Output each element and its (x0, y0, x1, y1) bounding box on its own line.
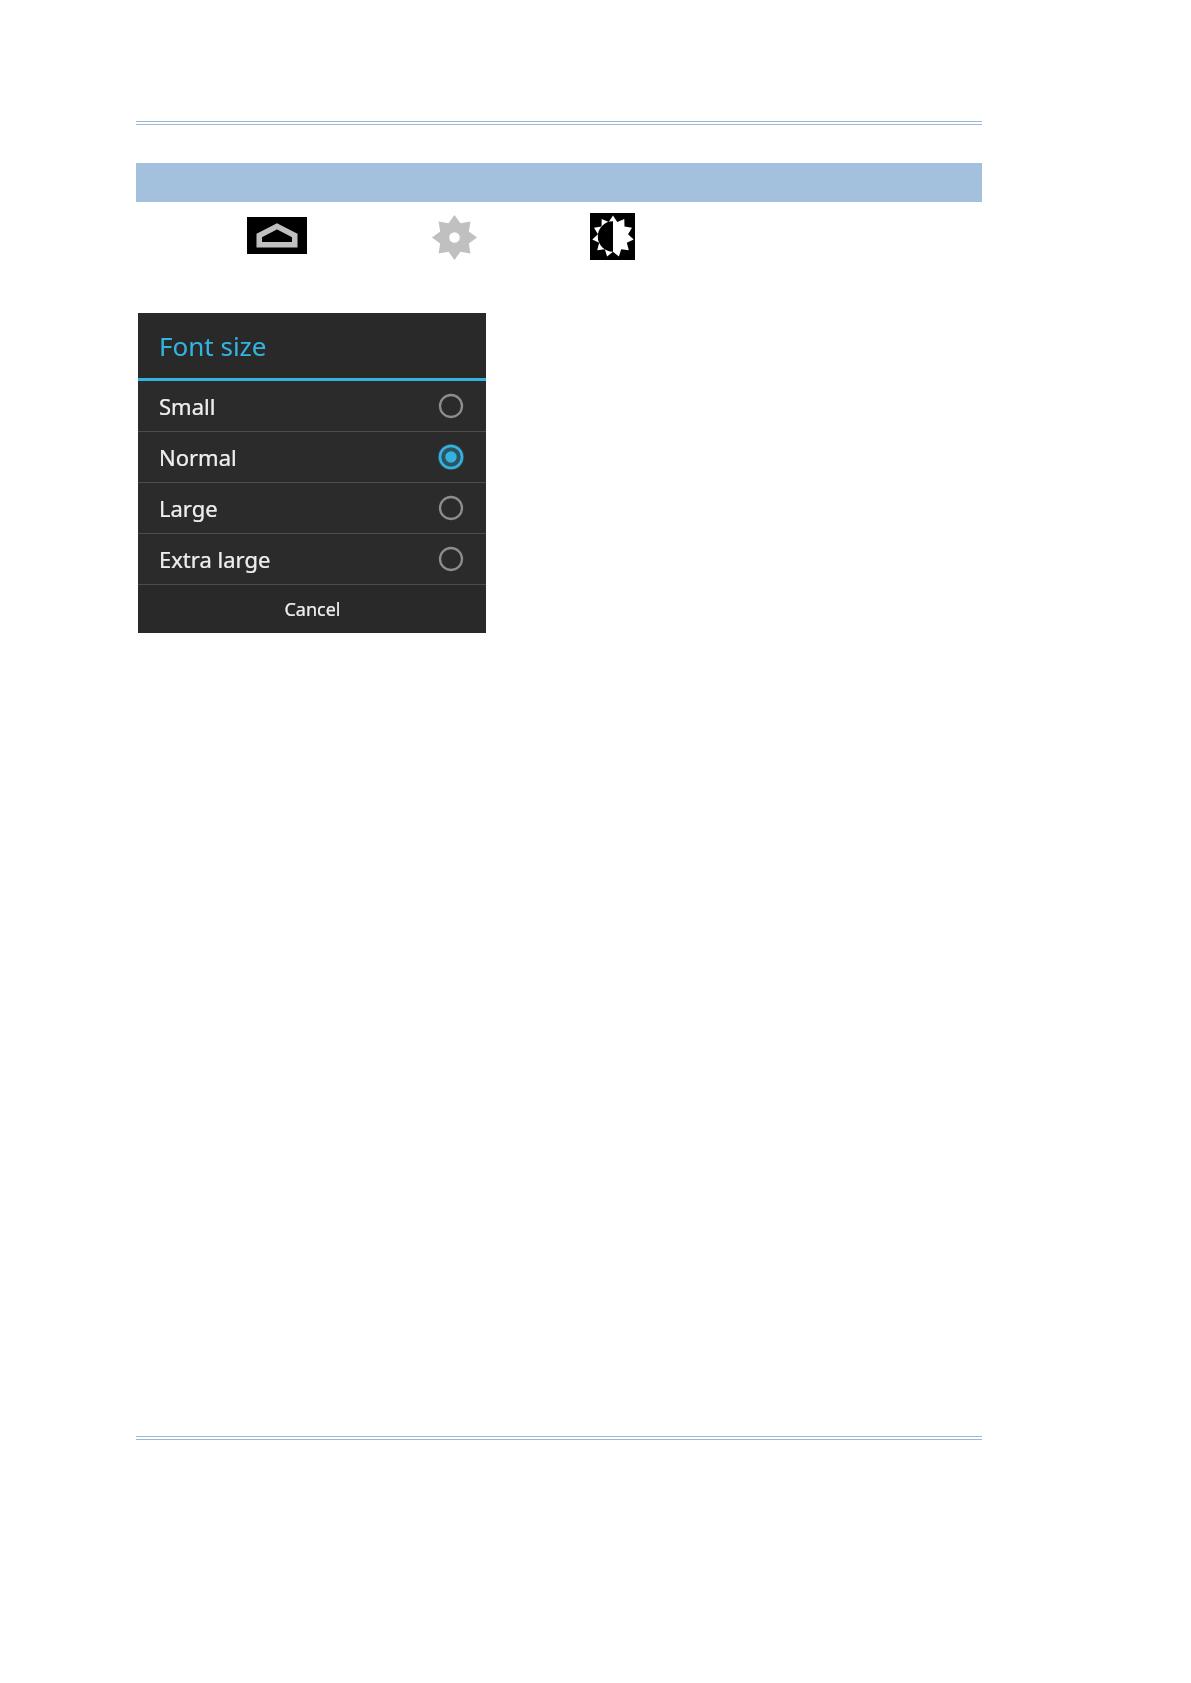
staticText: Extra large (159, 544, 271, 574)
staticText: Small (159, 391, 216, 421)
button[interactable]: Brightness (590, 213, 635, 260)
button[interactable]: Small (138, 381, 486, 431)
button[interactable]: Settings (429, 212, 479, 262)
staticText: Large (159, 493, 218, 523)
staticText: Normal (159, 442, 237, 472)
button[interactable]: Large (138, 483, 486, 533)
staticText: Cancel (284, 597, 341, 622)
staticText: Font size (159, 328, 267, 363)
button[interactable]: Cancel (138, 585, 486, 633)
button[interactable]: Home (247, 217, 307, 254)
button[interactable]: Extra large (138, 534, 486, 584)
button[interactable]: Normal (138, 432, 486, 482)
